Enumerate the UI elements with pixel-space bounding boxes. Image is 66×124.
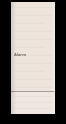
button[interactable]: Alarm — [14, 52, 27, 57]
